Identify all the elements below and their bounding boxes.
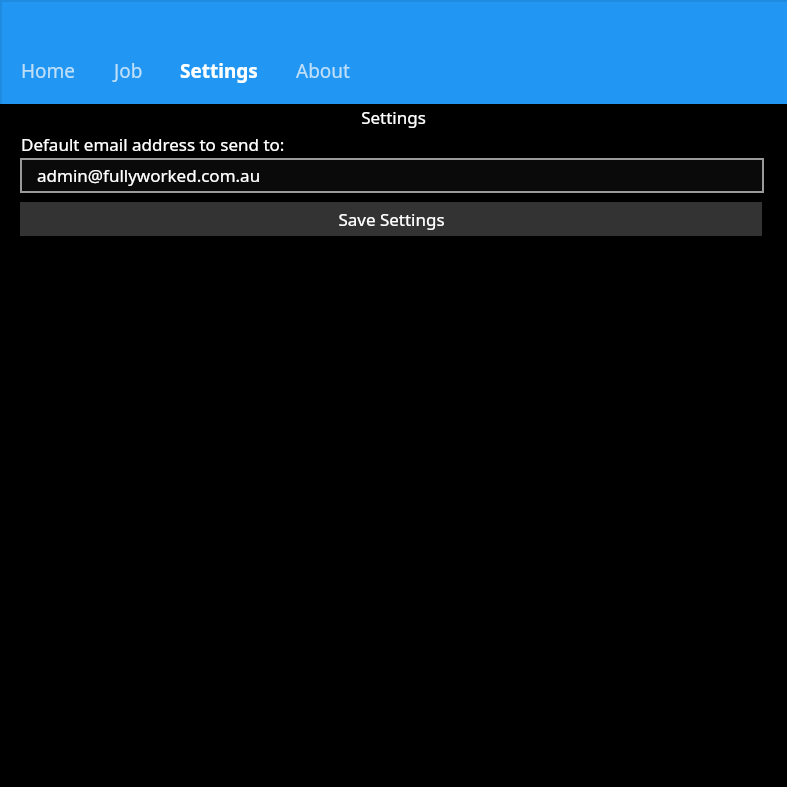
button[interactable]: Settings bbox=[180, 58, 258, 84]
button[interactable]: About bbox=[296, 58, 350, 84]
staticText: admin@fullyworked.com.au bbox=[37, 164, 261, 187]
button[interactable]: Save Settings bbox=[20, 202, 762, 236]
staticText: Settings bbox=[361, 106, 426, 129]
staticText: About bbox=[296, 58, 350, 84]
button[interactable]: Home bbox=[21, 58, 76, 84]
staticText: Save Settings bbox=[338, 208, 445, 231]
staticText: Default email address to send to: bbox=[21, 133, 285, 156]
staticText: Home bbox=[21, 58, 76, 84]
staticText: Job bbox=[114, 58, 143, 84]
button[interactable]: Job bbox=[114, 58, 143, 84]
button[interactable]: admin@fullyworked.com.au bbox=[20, 158, 764, 193]
staticText: Settings bbox=[180, 58, 258, 84]
